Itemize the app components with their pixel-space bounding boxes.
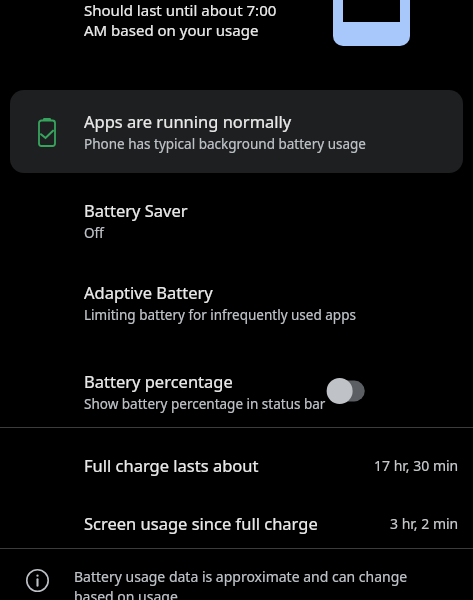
staticText: 17 hr, 30 min	[374, 456, 459, 475]
button[interactable]: Screen usage since full charge	[0, 500, 473, 546]
staticText: Screen usage since full charge	[84, 512, 318, 534]
staticText: AM based on your usage	[84, 20, 259, 40]
staticText: Show battery percentage in status bar	[84, 395, 326, 413]
button[interactable]: Battery usage data is approximate and ca…	[0, 558, 473, 600]
staticText: Battery Saver	[84, 199, 188, 221]
staticText: Battery usage data is approximate and ca…	[74, 567, 408, 600]
button[interactable]: Adaptive Battery	[0, 281, 473, 339]
staticText: Adaptive Battery	[84, 281, 213, 303]
button[interactable]: Battery percentage toggle	[323, 375, 375, 407]
staticText: Phone has typical background battery usa…	[84, 135, 366, 153]
staticText: Off	[84, 224, 104, 242]
staticText: Apps are running normally	[84, 110, 292, 132]
button[interactable]: Battery percentage	[0, 363, 473, 419]
button[interactable]: Apps are running normally	[10, 90, 463, 173]
staticText: Limiting battery for infrequently used a…	[84, 306, 356, 324]
staticText: Should last until about 7:00	[84, 0, 277, 20]
button[interactable]: Battery Saver	[0, 199, 473, 257]
button[interactable]: Full charge lasts about	[0, 442, 473, 488]
staticText: Full charge lasts about	[84, 454, 259, 476]
staticText: Battery percentage	[84, 370, 233, 392]
staticText: 3 hr, 2 min	[390, 514, 459, 533]
